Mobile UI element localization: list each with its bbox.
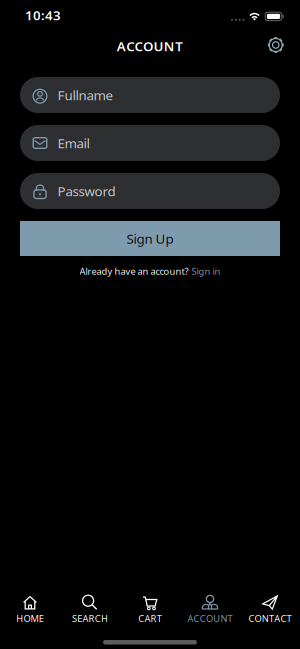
staticText: CONTACT — [248, 612, 292, 624]
button[interactable]: Settings — [267, 36, 300, 54]
staticText: HOME — [16, 612, 44, 624]
staticText: ACCOUNT — [187, 612, 233, 624]
staticText: 10:43 — [25, 6, 61, 24]
button[interactable]: Already have an account? — [79, 265, 220, 277]
button[interactable]: HOME — [0, 595, 60, 624]
button[interactable]: SEARCH — [60, 595, 120, 624]
staticText: Sign Up — [126, 230, 173, 247]
button[interactable]: CART — [120, 595, 180, 624]
staticText: Fullname — [57, 86, 113, 104]
staticText: Password — [57, 182, 115, 200]
staticText: Sign in — [191, 265, 220, 277]
staticText: SEARCH — [72, 612, 108, 624]
staticText: CART — [138, 612, 162, 624]
staticText: Already have an account? — [79, 265, 188, 277]
button[interactable]: ACCOUNT — [180, 595, 240, 624]
button[interactable]: CONTACT — [240, 595, 300, 624]
staticText: Email — [57, 134, 89, 152]
staticText: ACCOUNT — [117, 37, 183, 55]
button[interactable]: Sign Up — [20, 221, 280, 256]
